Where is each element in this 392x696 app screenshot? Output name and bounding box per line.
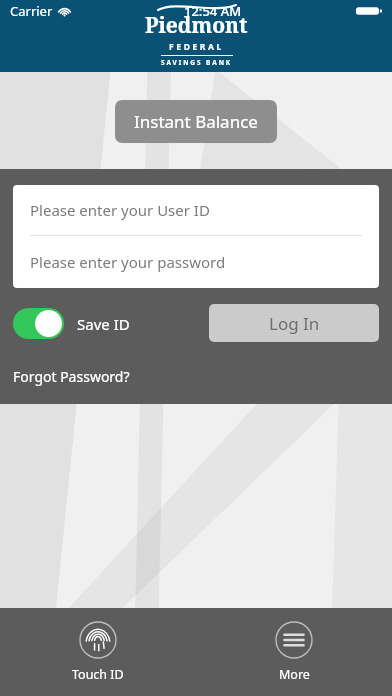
staticText: Please enter your password <box>30 252 226 272</box>
staticText: Forgot Password? <box>13 367 130 386</box>
staticText: Touch ID <box>72 666 124 683</box>
button[interactable]: Please enter your password <box>13 236 379 288</box>
button[interactable]: Touch ID <box>68 617 128 687</box>
staticText: Piedmont <box>145 11 248 40</box>
staticText: Please enter your User ID <box>30 200 210 220</box>
button[interactable]: Forgot Password? <box>13 364 130 389</box>
button[interactable]: Log In <box>209 304 379 342</box>
staticText: Save ID <box>77 314 130 334</box>
button[interactable]: Please enter your User ID <box>13 185 379 235</box>
button[interactable]: Instant Balance <box>115 100 277 143</box>
staticText: More <box>279 666 310 683</box>
staticText: 12:54 AM <box>184 2 242 20</box>
staticText: Carrier <box>10 2 53 20</box>
other: Touch ID <box>79 621 117 659</box>
staticText: Log In <box>269 312 320 335</box>
staticText: Instant Balance <box>134 110 258 133</box>
button[interactable]: Save ID <box>13 308 130 339</box>
button[interactable]: More <box>271 617 317 687</box>
staticText: FEDERAL <box>169 41 224 53</box>
staticText: SAVINGS BANK <box>161 58 233 67</box>
other: More <box>275 621 313 659</box>
